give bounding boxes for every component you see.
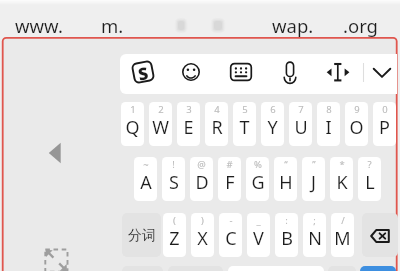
button[interactable]: 7 bbox=[289, 102, 312, 146]
staticText: www. bbox=[15, 13, 63, 38]
button[interactable]: 3 bbox=[177, 102, 200, 146]
button[interactable]: Hide keyboard bbox=[365, 55, 399, 89]
staticText: E bbox=[183, 115, 194, 140]
staticText: S bbox=[169, 170, 179, 195]
button[interactable]: 6 bbox=[261, 102, 284, 146]
staticText: 2 bbox=[158, 103, 164, 116]
button[interactable]: ~ bbox=[134, 157, 157, 201]
staticText: 7 bbox=[298, 103, 304, 116]
button[interactable]: 9 bbox=[345, 102, 368, 146]
button[interactable]: www. bbox=[7, 6, 63, 36]
staticText: Z bbox=[169, 226, 180, 251]
button[interactable] bbox=[170, 7, 192, 35]
button[interactable]: Previous bbox=[47, 141, 63, 165]
staticText: O bbox=[349, 115, 364, 140]
button[interactable]: Move cursor bbox=[321, 55, 355, 89]
staticText: ~ bbox=[143, 158, 149, 171]
staticText: C bbox=[225, 226, 237, 251]
button[interactable]: ) bbox=[191, 213, 214, 257]
button[interactable]: .org bbox=[335, 6, 391, 36]
button[interactable]: @ bbox=[190, 157, 213, 201]
button[interactable]: Enter bbox=[360, 266, 396, 271]
button[interactable]: * bbox=[330, 157, 353, 201]
button[interactable]: Voice input bbox=[273, 55, 307, 89]
button[interactable] bbox=[206, 7, 230, 35]
button[interactable]: Keyboard layout bbox=[224, 55, 258, 89]
button[interactable]: Backspace bbox=[362, 213, 398, 257]
staticText: * bbox=[339, 158, 345, 171]
button[interactable]: 5 bbox=[233, 102, 256, 146]
staticText: F bbox=[225, 170, 235, 195]
button[interactable]: ! bbox=[162, 157, 185, 201]
staticText: ; bbox=[313, 214, 316, 227]
staticText: ” bbox=[312, 158, 316, 171]
staticText: R bbox=[211, 115, 223, 140]
button[interactable]: Emoji bbox=[174, 55, 208, 89]
button[interactable]: wap. bbox=[264, 6, 320, 36]
staticText: M bbox=[334, 226, 351, 251]
button[interactable]: ; bbox=[303, 213, 326, 257]
staticText: L bbox=[365, 170, 375, 195]
staticText: “ bbox=[284, 158, 288, 171]
staticText: S bbox=[136, 61, 150, 83]
staticText: 6 bbox=[270, 103, 276, 116]
staticText: _ bbox=[256, 214, 261, 227]
staticText: ( bbox=[173, 214, 176, 227]
staticText: .org bbox=[343, 13, 378, 38]
button[interactable]: 8 bbox=[317, 102, 340, 146]
staticText: G bbox=[251, 170, 265, 195]
staticText: W bbox=[152, 115, 169, 140]
staticText: Y bbox=[267, 115, 278, 140]
button[interactable]: ( bbox=[163, 213, 186, 257]
button[interactable]: ” bbox=[302, 157, 325, 201]
button[interactable]: 1 bbox=[121, 102, 144, 146]
staticText: - bbox=[229, 214, 233, 227]
staticText: A bbox=[140, 170, 152, 195]
staticText: Q bbox=[125, 115, 140, 140]
button[interactable]: Sogou input settings bbox=[126, 55, 160, 89]
button[interactable]: ? bbox=[358, 157, 381, 201]
staticText: 3 bbox=[186, 103, 192, 116]
button[interactable]: - bbox=[219, 213, 242, 257]
button[interactable]: : bbox=[275, 213, 298, 257]
button[interactable]: % bbox=[246, 157, 269, 201]
staticText: N bbox=[308, 226, 322, 251]
staticText: # bbox=[226, 158, 233, 171]
staticText: V bbox=[253, 226, 264, 251]
staticText: ? bbox=[367, 158, 372, 171]
button[interactable]: 4 bbox=[205, 102, 228, 146]
staticText: 1 bbox=[130, 103, 136, 116]
button[interactable]: # bbox=[218, 157, 241, 201]
staticText: ! bbox=[172, 158, 175, 171]
staticText: m. bbox=[101, 13, 124, 38]
staticText: wap. bbox=[272, 13, 314, 38]
staticText: 5 bbox=[242, 103, 248, 116]
staticText: % bbox=[254, 158, 262, 171]
button[interactable]: “ bbox=[274, 157, 297, 201]
staticText: 9 bbox=[354, 103, 360, 116]
staticText: 分词 bbox=[128, 227, 156, 245]
staticText: P bbox=[379, 115, 390, 140]
staticText: X bbox=[197, 226, 208, 251]
staticText: I bbox=[325, 115, 332, 140]
staticText: 0 bbox=[382, 103, 388, 116]
staticText: @ bbox=[197, 158, 206, 171]
staticText: H bbox=[279, 170, 293, 195]
button[interactable]: m. bbox=[93, 6, 129, 36]
staticText: 4 bbox=[214, 103, 220, 116]
button[interactable]: 0 bbox=[373, 102, 396, 146]
staticText: : bbox=[285, 214, 288, 227]
button[interactable]: Resize keyboard bbox=[44, 248, 70, 271]
button[interactable]: 2 bbox=[149, 102, 172, 146]
button[interactable]: 分词 bbox=[122, 213, 161, 257]
staticText: K bbox=[336, 170, 348, 195]
staticText: T bbox=[239, 115, 250, 140]
button[interactable]: _ bbox=[247, 213, 270, 257]
button[interactable]: / bbox=[331, 213, 354, 257]
staticText: B bbox=[281, 226, 293, 251]
staticText: U bbox=[294, 115, 308, 140]
